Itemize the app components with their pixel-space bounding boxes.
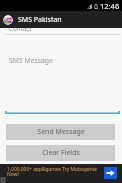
- other: Open advertisement: [104, 167, 117, 179]
- other: Ad info: [0, 177, 6, 183]
- button[interactable]: Contact: [5, 20, 120, 35]
- staticText: Contact: [9, 24, 32, 32]
- staticText: 1,000,000+ app&games Try Mobogenie: [7, 166, 97, 173]
- button[interactable]: 1,000,000+ app&games Try Mobogenie: [0, 164, 122, 183]
- button[interactable]: Clear Fields: [6, 145, 115, 161]
- staticText: 12:46: [100, 1, 120, 11]
- staticText: Send Message: [37, 127, 85, 137]
- button[interactable]: Send Message: [6, 124, 115, 140]
- staticText: Now!: [7, 171, 19, 178]
- staticText: SMS Message: [9, 56, 53, 65]
- button[interactable]: SMS Message: [5, 52, 120, 114]
- staticText: SMS Pakistan: [18, 15, 62, 25]
- staticText: Clear Fields: [42, 148, 80, 158]
